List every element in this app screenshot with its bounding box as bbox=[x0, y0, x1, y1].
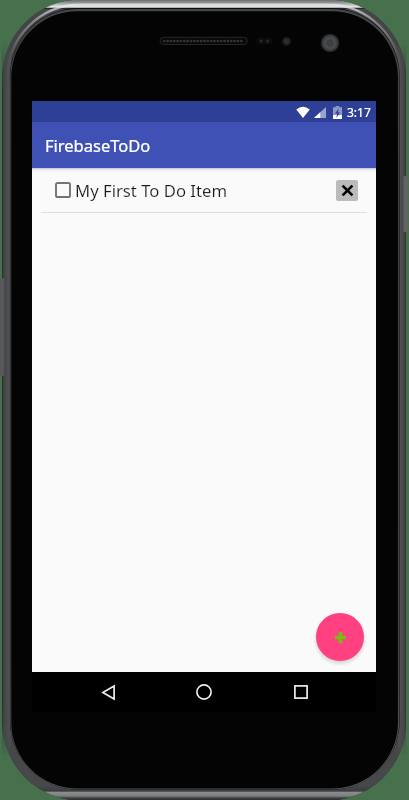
button[interactable]: My First To Do Item bbox=[32, 168, 376, 213]
staticText: 3:17 bbox=[347, 104, 371, 120]
staticText: My First To Do Item bbox=[75, 179, 228, 202]
button[interactable]: Recent apps bbox=[281, 672, 321, 712]
button[interactable]: Home bbox=[184, 672, 224, 712]
staticText: FirebaseToDo bbox=[45, 134, 151, 156]
button[interactable]: Add new item bbox=[316, 613, 364, 661]
button[interactable]: Back bbox=[88, 672, 128, 712]
button[interactable]: Delete item bbox=[336, 180, 358, 201]
